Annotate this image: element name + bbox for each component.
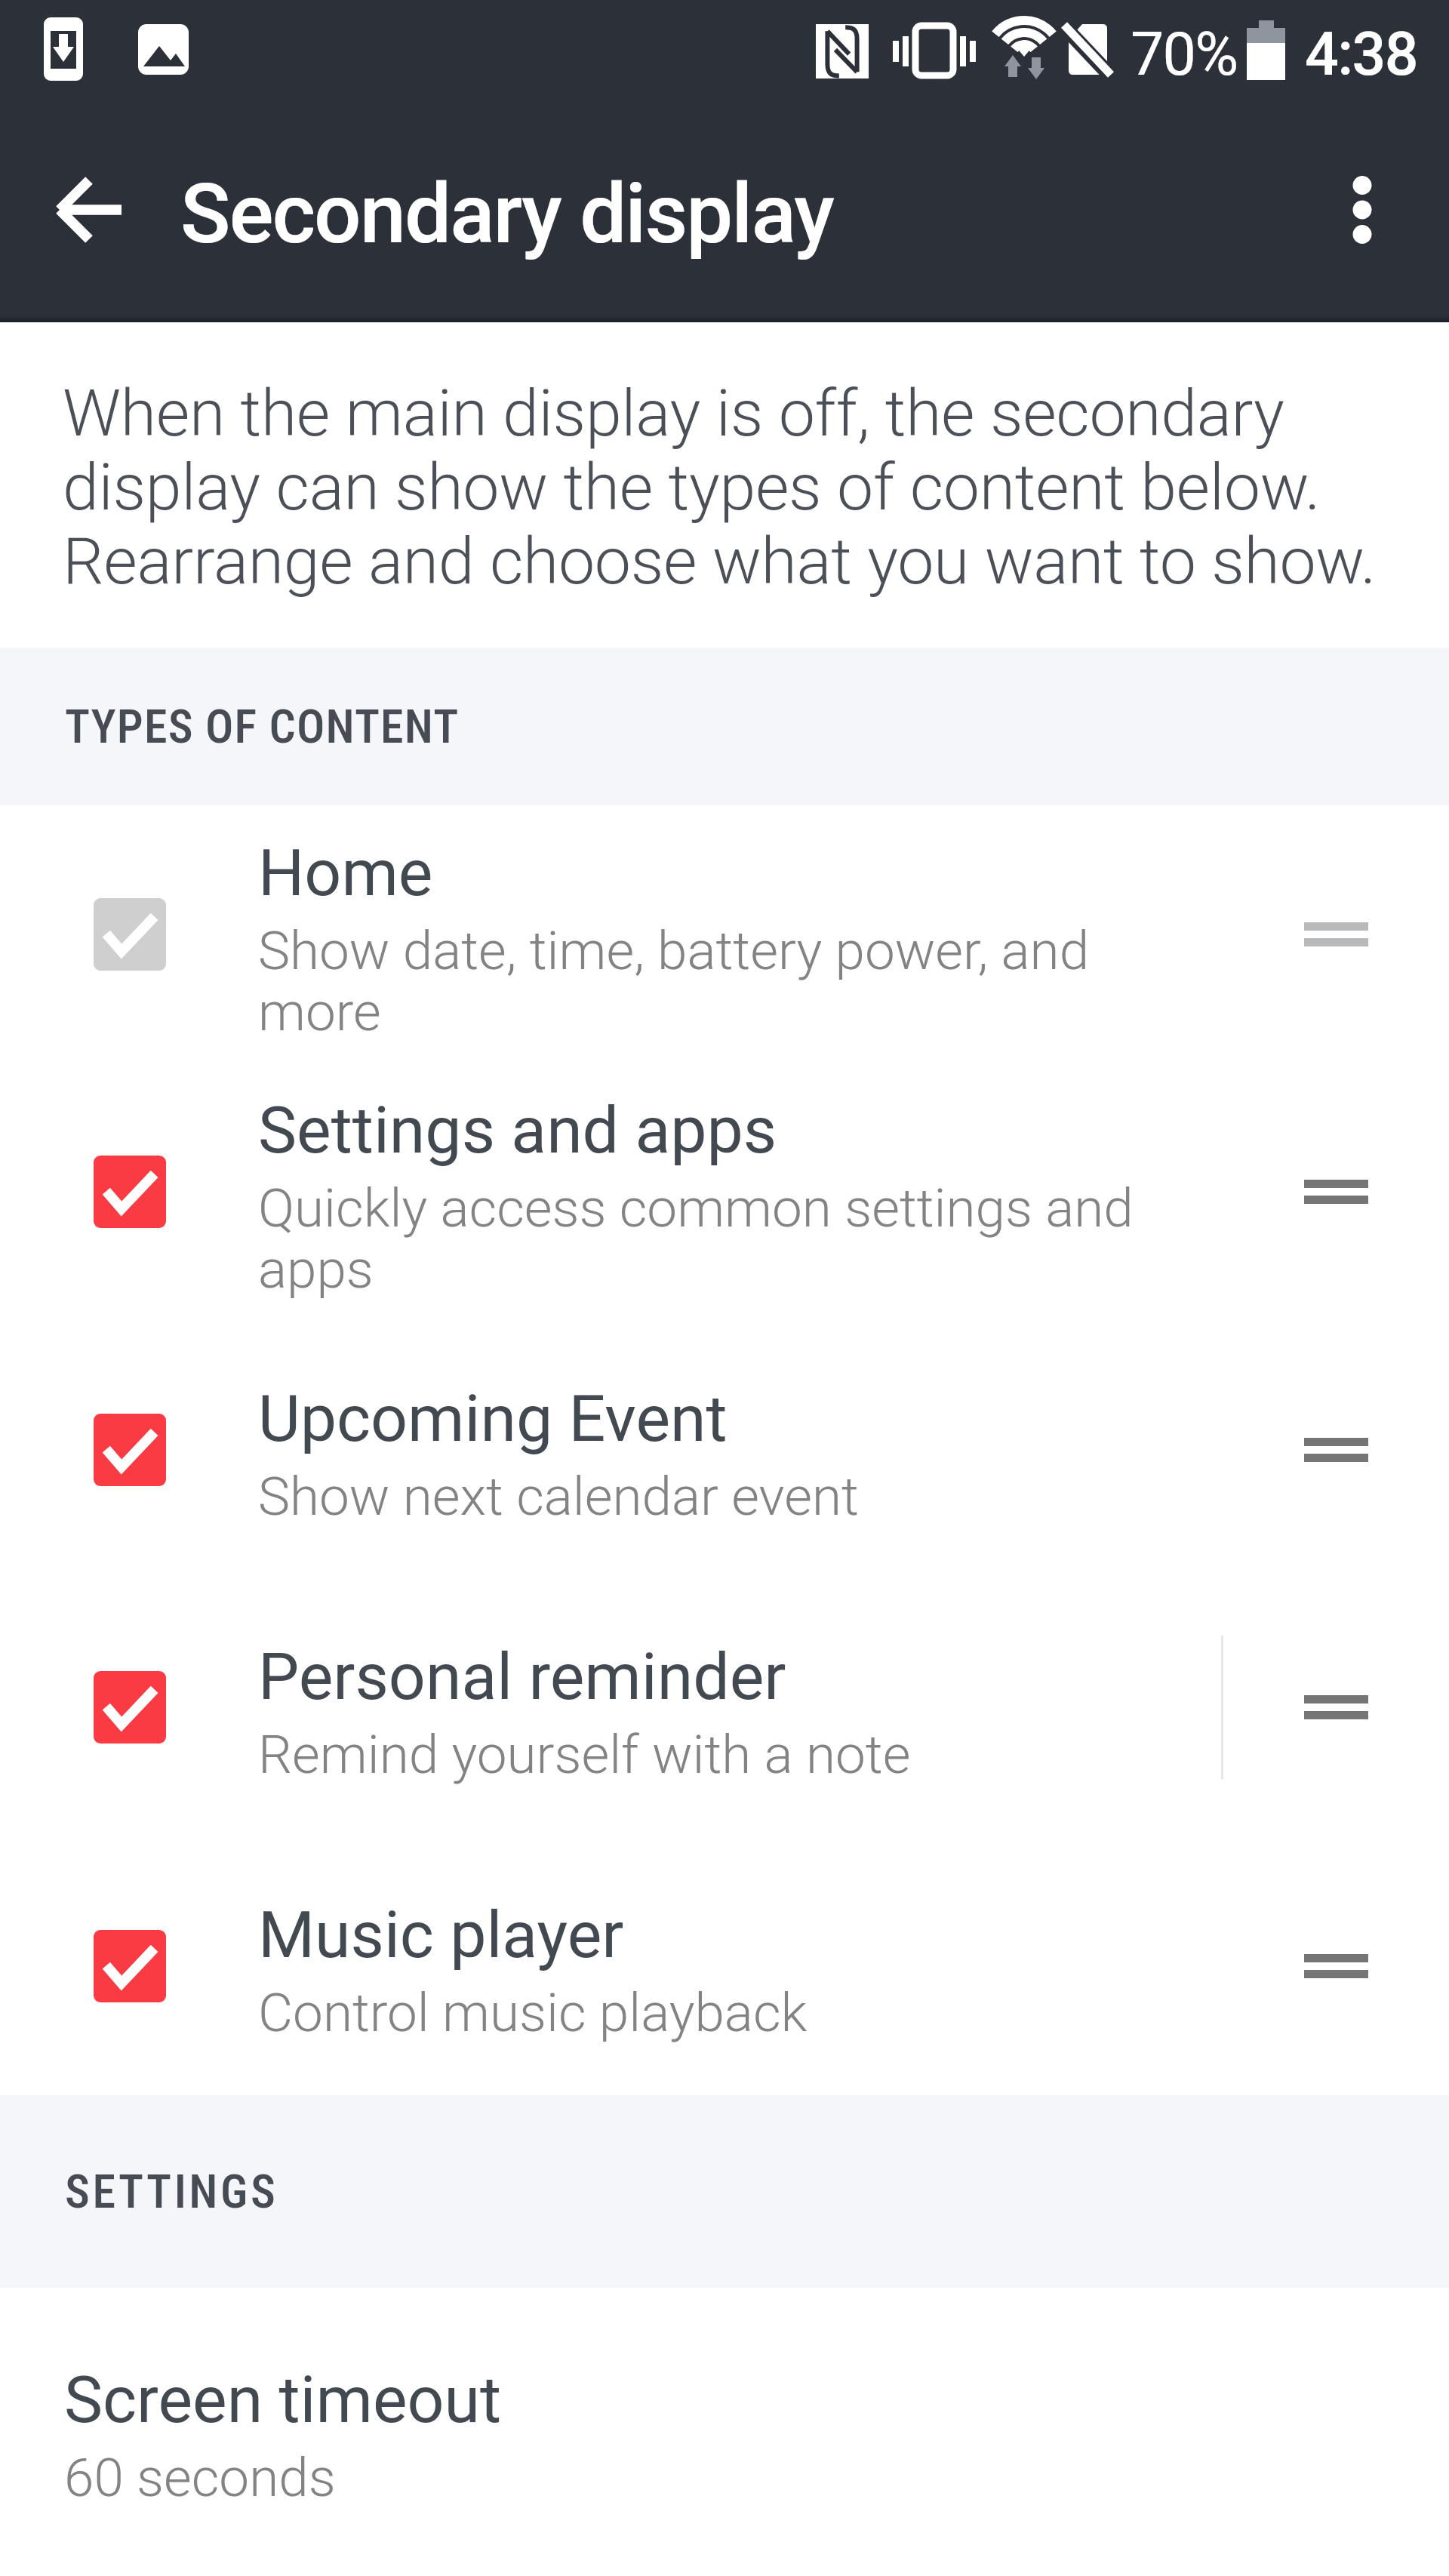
button[interactable]: Toggle Upcoming Event (94, 1414, 166, 1486)
button[interactable]: Toggle Music player (94, 1930, 166, 2002)
button[interactable]: Toggle Home (0, 805, 1449, 1063)
staticText: SETTINGS (65, 2164, 278, 2219)
staticText: Home (258, 835, 433, 911)
button[interactable]: Toggle Settings and apps (0, 1063, 1449, 1321)
staticText: Show date, time, battery power, and more (258, 919, 1138, 1043)
staticText: Screen timeout (64, 2362, 502, 2438)
staticText: Music player (258, 1897, 624, 1973)
button[interactable]: Toggle Personal reminder (94, 1671, 166, 1743)
staticText: Show next calendar event (258, 1465, 859, 1528)
button[interactable]: Reorder Home (1223, 805, 1449, 1063)
button[interactable]: Reorder Personal reminder (1223, 1578, 1449, 1836)
button[interactable]: Toggle Settings and apps (94, 1156, 166, 1228)
button[interactable]: Reorder Upcoming Event (1223, 1321, 1449, 1578)
button[interactable]: Toggle Music player (0, 1836, 1449, 2095)
staticText: Personal reminder (258, 1639, 786, 1715)
staticText: 4:38 (1305, 20, 1417, 90)
staticText: Settings and apps (258, 1092, 777, 1168)
staticText: Upcoming Event (258, 1380, 728, 1457)
staticText: Quickly access common settings and apps (258, 1177, 1138, 1300)
button[interactable]: Back (38, 165, 128, 255)
button[interactable]: Toggle Personal reminder (0, 1578, 1449, 1836)
button[interactable]: Toggle Upcoming Event (0, 1321, 1449, 1578)
button[interactable]: Reorder Music player (1223, 1836, 1449, 2095)
button[interactable]: More options (1340, 165, 1385, 255)
button[interactable]: Reorder Settings and apps (1223, 1063, 1449, 1321)
staticText: 60 seconds (64, 2446, 336, 2509)
staticText: Secondary display (180, 165, 833, 263)
staticText: When the main display is off, the second… (63, 375, 1420, 599)
button[interactable]: Toggle Home (94, 898, 166, 971)
staticText: TYPES OF CONTENT (65, 699, 460, 754)
staticText: Remind yourself with a note (258, 1723, 911, 1786)
staticText: Control music playback (258, 1981, 808, 2044)
button[interactable]: Screen timeout (0, 2288, 1449, 2537)
staticText: 70% (1131, 20, 1238, 90)
